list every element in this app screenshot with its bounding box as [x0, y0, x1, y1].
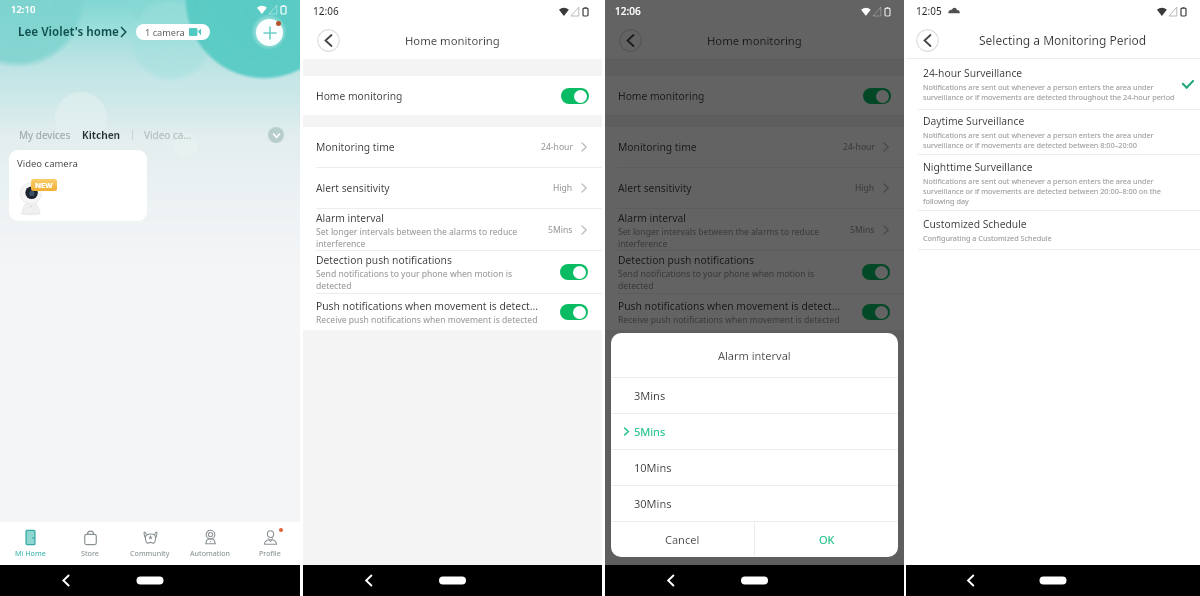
button[interactable]: Alert sensitivity	[303, 168, 602, 208]
staticText: Daytime Surveillance	[923, 114, 1025, 128]
button[interactable]: Monitoring time	[303, 127, 602, 167]
staticText: 12:06	[615, 4, 641, 18]
button[interactable]: Toggle	[560, 264, 588, 280]
button[interactable]: Lee Violet's home	[18, 24, 128, 40]
button[interactable]: Toggle	[862, 264, 890, 280]
button[interactable]: Push notifications when movement is dete…	[605, 294, 904, 330]
staticText: Home monitoring	[618, 89, 705, 103]
button[interactable]: Mi Home	[0, 522, 60, 565]
button[interactable]: Toggle	[561, 88, 589, 104]
staticText: Receive push notifications when movement…	[316, 314, 538, 326]
staticText: Monitoring time	[618, 140, 697, 154]
staticText: Set longer intervals between the alarms …	[316, 226, 526, 249]
button[interactable]: Detection push notifications	[605, 251, 904, 293]
staticText: Push notifications when movement is dete…	[618, 299, 841, 313]
staticText: Cancel	[665, 532, 700, 547]
staticText: Alarm interval	[316, 211, 385, 225]
staticText: Receive push notifications when movement…	[618, 314, 840, 326]
staticText: 30Mins	[634, 496, 672, 511]
button[interactable]: My devices	[19, 128, 71, 142]
button[interactable]: Alarm interval	[303, 209, 602, 250]
button[interactable]: 5Mins	[611, 414, 898, 449]
button[interactable]: Community	[120, 522, 180, 565]
button[interactable]: Push notifications when movement is dete…	[303, 294, 602, 330]
button[interactable]: Nighttime Surveillance	[906, 155, 1200, 210]
staticText: 1 camera	[145, 26, 185, 39]
staticText: Lee Violet's home	[18, 24, 119, 40]
staticText: Nighttime Surveillance	[923, 160, 1033, 174]
button[interactable]: Toggle	[863, 88, 891, 104]
button[interactable]: Kitchen	[82, 128, 121, 142]
button[interactable]: 3Mins	[611, 378, 898, 413]
staticText: Selecting a Monitoring Period	[979, 32, 1147, 48]
staticText: 12:05	[916, 4, 942, 18]
button[interactable]: Cancel	[611, 522, 754, 557]
staticText: Home monitoring	[405, 33, 500, 48]
staticText: Set longer intervals between the alarms …	[618, 226, 828, 249]
button[interactable]: Detection push notifications	[303, 251, 602, 293]
staticText: Send notifications to your phone when mo…	[316, 268, 538, 291]
button[interactable]: Home monitoring	[605, 76, 904, 115]
staticText: OK	[819, 532, 835, 547]
staticText: NEW	[35, 180, 53, 190]
staticText: Customized Schedule	[923, 217, 1027, 231]
staticText: Store	[81, 548, 99, 558]
button[interactable]: 24-hour Surveillance	[906, 59, 1200, 109]
staticText: Home monitoring	[316, 89, 403, 103]
staticText: Video camera	[17, 157, 78, 170]
staticText: Alert sensitivity	[618, 181, 692, 195]
staticText: 24-hour Surveillance	[923, 66, 1023, 80]
staticText: Notifications are sent out whenever a pe…	[923, 82, 1175, 102]
staticText: Mi Home	[15, 548, 46, 558]
staticText: Configurating a Customized Schedule	[923, 233, 1175, 243]
button[interactable]: Toggle	[862, 304, 890, 320]
staticText: High	[855, 182, 875, 194]
staticText: Alarm interval	[618, 211, 687, 225]
button[interactable]: Customized Schedule	[906, 211, 1200, 249]
staticText: Push notifications when movement is dete…	[316, 299, 539, 313]
button[interactable]: 10Mins	[611, 450, 898, 485]
button[interactable]: OK	[755, 522, 898, 557]
staticText: Send notifications to your phone when mo…	[618, 268, 840, 291]
staticText: 12:06	[313, 4, 339, 18]
button[interactable]: Back	[619, 29, 642, 52]
button[interactable]: Toggle	[560, 304, 588, 320]
staticText: 12:06	[615, 4, 641, 18]
button[interactable]: Monitoring time	[605, 127, 904, 167]
staticText: 10Mins	[634, 460, 672, 475]
button[interactable]: 1 camera	[136, 24, 210, 40]
button[interactable]: Add device	[256, 19, 283, 46]
button[interactable]: Profile	[240, 522, 300, 565]
staticText: Notifications are sent out whenever a pe…	[923, 130, 1175, 150]
staticText: Automation	[190, 548, 230, 558]
staticText: Profile	[259, 548, 281, 558]
button[interactable]: Home monitoring	[303, 76, 602, 115]
button[interactable]: Video ca...	[144, 128, 192, 142]
staticText: Alert sensitivity	[316, 181, 390, 195]
staticText: Detection push notifications	[618, 253, 754, 267]
staticText: Home monitoring	[707, 33, 802, 48]
button[interactable]: Back	[317, 29, 340, 52]
staticText: 12:10	[11, 3, 36, 16]
button[interactable]: Daytime Surveillance	[906, 110, 1200, 154]
button[interactable]: 30Mins	[611, 486, 898, 521]
button[interactable]: Video camera	[9, 150, 147, 221]
button[interactable]: Alert sensitivity	[605, 168, 904, 208]
button[interactable]: Back	[916, 29, 939, 52]
button[interactable]: Expand	[268, 127, 284, 143]
staticText: 5Mins	[850, 224, 875, 236]
staticText: 3Mins	[634, 388, 666, 403]
staticText: Notifications are sent out whenever a pe…	[923, 176, 1175, 206]
button[interactable]: Store	[60, 522, 120, 565]
staticText: Monitoring time	[316, 140, 395, 154]
staticText: 24-hour	[843, 141, 875, 153]
staticText: High	[553, 182, 573, 194]
button[interactable]: Automation	[180, 522, 240, 565]
staticText: Detection push notifications	[316, 253, 452, 267]
button[interactable]: Alarm interval	[605, 209, 904, 250]
staticText: 24-hour	[541, 141, 573, 153]
staticText: 5Mins	[634, 424, 666, 439]
staticText: Alarm interval	[718, 348, 791, 363]
staticText: 5Mins	[548, 224, 573, 236]
staticText: Community	[130, 548, 170, 558]
